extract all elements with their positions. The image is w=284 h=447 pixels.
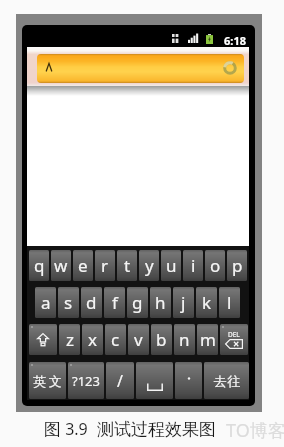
staticText: c [111, 328, 120, 351]
button[interactable]: p [227, 250, 247, 281]
button[interactable]: q [29, 250, 49, 281]
button[interactable]: m [197, 324, 218, 355]
staticText: i [191, 254, 196, 277]
button[interactable]: t [117, 250, 137, 281]
button[interactable]: j [173, 287, 194, 318]
button[interactable]: e [73, 250, 93, 281]
staticText: 测试过程效果图 [97, 419, 216, 440]
button[interactable]: ?123 [68, 362, 104, 399]
button[interactable]: v [128, 324, 149, 355]
button[interactable]: 英文 [29, 362, 66, 399]
other: Period [184, 373, 194, 389]
other: Shift [37, 333, 49, 346]
staticText: u [166, 254, 177, 277]
button[interactable]: y [139, 250, 159, 281]
staticText: h [155, 291, 166, 314]
staticText: z [66, 328, 74, 351]
staticText: 去往 [213, 373, 241, 389]
button[interactable]: s [58, 287, 79, 318]
staticText: p [232, 254, 243, 277]
staticText: / [117, 370, 123, 392]
staticText: o [210, 254, 221, 277]
button[interactable]: c [105, 324, 126, 355]
staticText: t [124, 254, 131, 277]
staticText: s [64, 291, 73, 314]
staticText: f [112, 291, 118, 314]
button[interactable]: Loading [37, 54, 244, 83]
staticText: j [181, 291, 186, 314]
staticText: TO博客 [226, 418, 284, 443]
button[interactable]: f [104, 287, 125, 318]
staticText: n [179, 328, 190, 351]
staticText: d [86, 291, 97, 314]
staticText: r [101, 254, 109, 277]
button[interactable]: a [35, 287, 56, 318]
staticText: e [78, 254, 88, 277]
staticText: 3.9 [61, 418, 97, 440]
other: Loading [223, 61, 237, 75]
staticText: 6:18 [224, 33, 246, 48]
button[interactable]: o [205, 250, 225, 281]
staticText: w [54, 254, 68, 277]
staticText: x [88, 328, 97, 351]
staticText: 英文 [32, 373, 63, 389]
staticText: b [156, 328, 167, 351]
button[interactable]: w [51, 250, 71, 281]
staticText: g [132, 291, 143, 314]
button[interactable]: z [59, 324, 80, 355]
button[interactable]: r [95, 250, 115, 281]
staticText: DEL [228, 330, 240, 339]
button[interactable]: b [151, 324, 172, 355]
staticText: v [134, 328, 143, 351]
other: Space [147, 371, 163, 391]
other: Delete [225, 330, 243, 349]
button[interactable]: Shift [29, 324, 57, 355]
staticText: 图 [44, 419, 61, 440]
button[interactable]: h [150, 287, 171, 318]
button[interactable]: k [196, 287, 217, 318]
staticText: q [34, 254, 45, 277]
staticText: k [202, 291, 212, 314]
staticText: m [200, 328, 216, 351]
button[interactable]: / [106, 362, 134, 399]
button[interactable]: x [82, 324, 103, 355]
button[interactable]: i [183, 250, 203, 281]
staticText: ?123 [72, 372, 100, 390]
staticText: a [41, 291, 51, 314]
button[interactable]: d [81, 287, 102, 318]
button[interactable]: l [219, 287, 240, 318]
button[interactable]: Space [136, 362, 173, 399]
staticText: l [227, 291, 232, 314]
button[interactable]: u [161, 250, 181, 281]
button[interactable]: g [127, 287, 148, 318]
button[interactable]: Period [175, 362, 202, 399]
button[interactable]: Delete [220, 324, 248, 355]
button[interactable]: 去往 [204, 362, 249, 399]
button[interactable]: n [174, 324, 195, 355]
staticText: y [145, 254, 154, 277]
